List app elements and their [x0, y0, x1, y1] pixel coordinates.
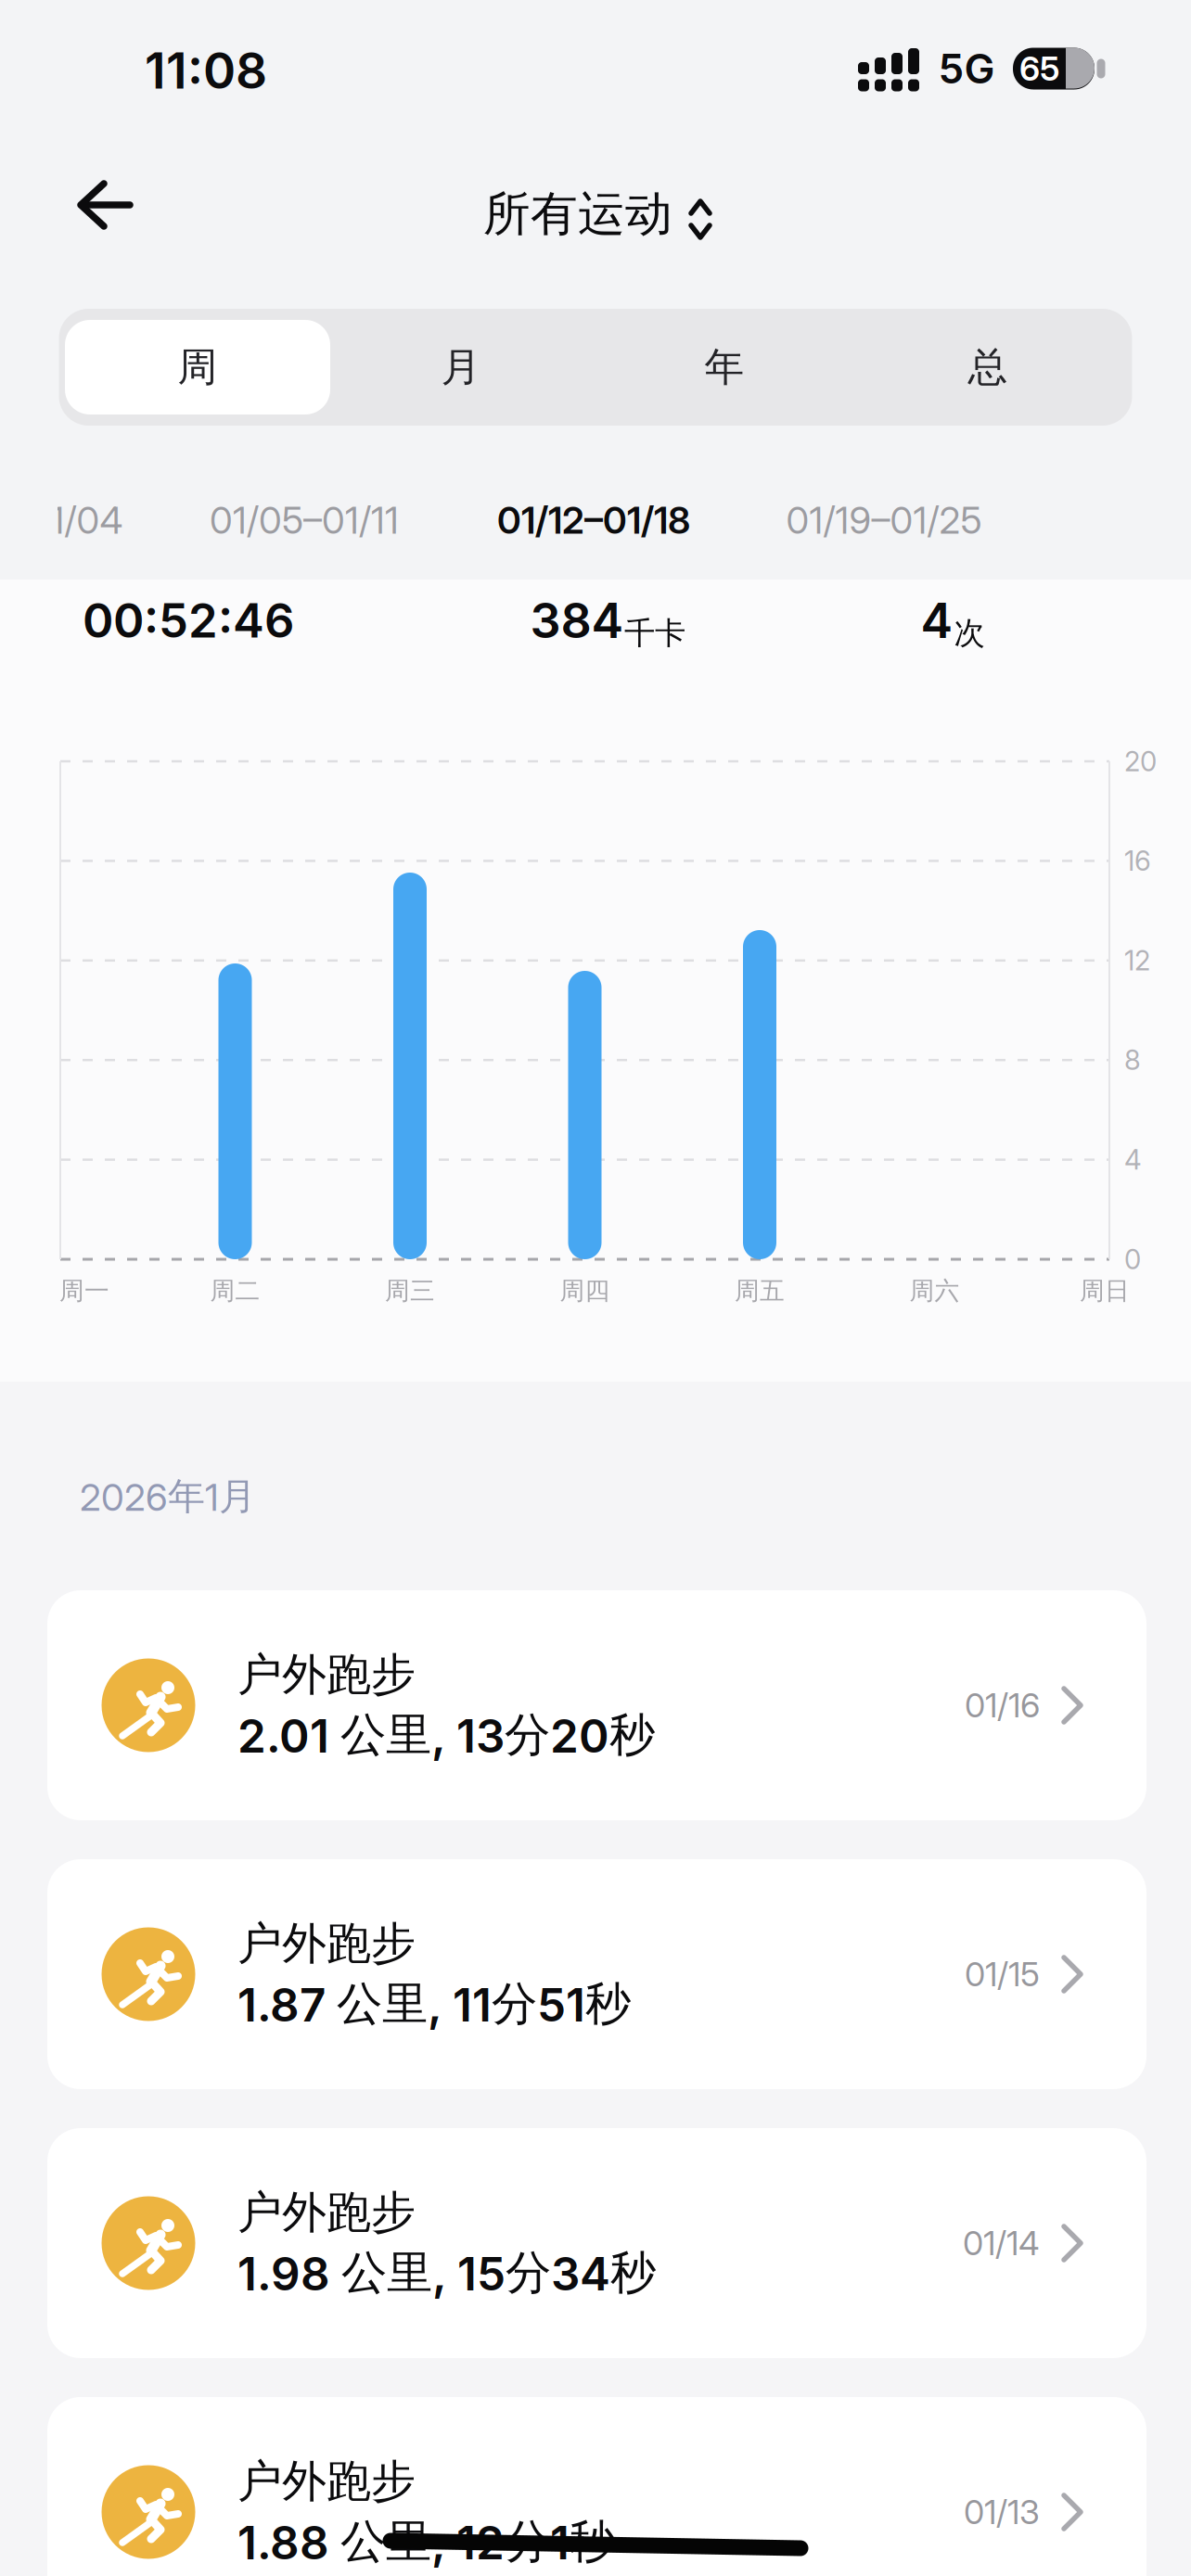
- staticText: 2.01 公里, 13分20秒: [237, 1707, 655, 1763]
- staticText: 4: [1124, 1144, 1142, 1176]
- button[interactable]: 年: [595, 316, 854, 418]
- staticText: 1.87 公里, 11分51秒: [237, 1976, 631, 2032]
- staticText: 01/05–01/11: [210, 498, 399, 542]
- button[interactable]: 户外跑步: [0, 0, 1191, 2576]
- button[interactable]: 户外跑步: [0, 0, 1191, 2576]
- staticText: 01/12–01/18: [497, 498, 690, 542]
- staticText: 0: [1124, 1243, 1141, 1275]
- staticText: 01/14: [963, 2223, 1040, 2263]
- staticText: 5G: [938, 45, 995, 93]
- button[interactable]: 12/29–01/04: [0, 498, 123, 542]
- staticText: 周二: [210, 1276, 260, 1306]
- staticText: 01/16: [965, 1686, 1040, 1725]
- staticText: 户外跑步: [237, 1647, 416, 1702]
- staticText: 20: [1124, 745, 1157, 777]
- button[interactable]: 01/19–01/25: [786, 498, 982, 542]
- staticText: 01/19–01/25: [786, 498, 982, 542]
- staticText: 00:52:46: [83, 593, 294, 648]
- staticText: 65: [1019, 49, 1060, 88]
- staticText: 16: [1124, 845, 1151, 877]
- staticText: 户外跑步: [237, 2185, 416, 2240]
- staticText: 周五: [735, 1276, 785, 1306]
- staticText: 1.98 公里, 15分34秒: [237, 2245, 656, 2301]
- staticText: 4: [921, 592, 953, 649]
- button[interactable]: 户外跑步: [0, 0, 1191, 2576]
- staticText: 所有运动: [483, 185, 672, 243]
- staticText: 01/13: [964, 2492, 1040, 2532]
- staticText: 384: [530, 592, 624, 649]
- staticText: 周一: [59, 1276, 109, 1306]
- staticText: 11:08: [145, 41, 267, 100]
- button[interactable]: [0, 0, 1191, 2576]
- button[interactable]: 月: [331, 316, 591, 418]
- staticText: 周六: [909, 1276, 960, 1306]
- button[interactable]: 户外跑步: [0, 0, 1191, 2576]
- staticText: 户外跑步: [237, 1916, 416, 1971]
- staticText: 2026年1月: [80, 1474, 256, 1519]
- staticText: 次: [954, 614, 985, 652]
- staticText: 12: [1124, 944, 1150, 977]
- staticText: 周四: [560, 1276, 610, 1306]
- staticText: 千卡: [624, 614, 685, 652]
- staticText: 周: [178, 343, 218, 392]
- staticText: 12/29–01/04: [0, 498, 123, 542]
- staticText: 周三: [385, 1276, 435, 1306]
- staticText: 总: [968, 343, 1008, 392]
- staticText: 户外跑步: [237, 2454, 416, 2509]
- staticText: 8: [1124, 1044, 1141, 1076]
- button[interactable]: 所有运动: [0, 0, 1191, 2576]
- button[interactable]: 总: [858, 316, 1118, 418]
- staticText: 1.88 公里, 12分1秒: [237, 2514, 615, 2570]
- button[interactable]: 01/05–01/11: [210, 498, 399, 542]
- staticText: 月: [441, 343, 481, 392]
- staticText: 01/15: [965, 1955, 1040, 1994]
- staticText: 周日: [1080, 1276, 1130, 1306]
- button[interactable]: 周: [65, 320, 330, 414]
- button[interactable]: 01/12–01/18: [497, 498, 690, 542]
- staticText: 年: [704, 343, 744, 392]
